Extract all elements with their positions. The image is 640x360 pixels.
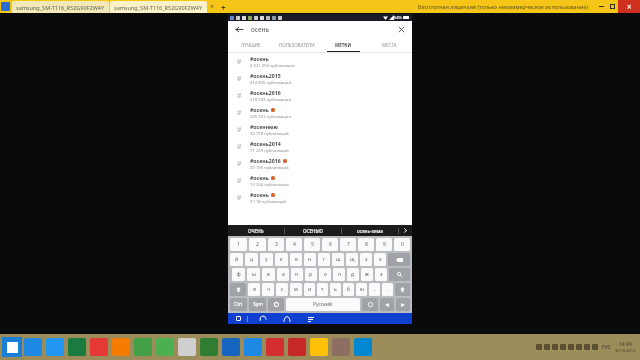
button[interactable]: # <box>228 172 412 189</box>
button[interactable]: # <box>228 87 412 104</box>
button[interactable]: Search <box>389 268 410 281</box>
button[interactable]: к <box>275 253 288 266</box>
button[interactable]: # <box>228 138 412 155</box>
button[interactable]: Clear search <box>395 23 407 35</box>
button[interactable]: Taskbar app <box>46 338 64 356</box>
button[interactable]: л <box>333 268 345 281</box>
button[interactable]: н <box>304 253 316 266</box>
button[interactable]: Taskbar app <box>200 338 218 356</box>
button[interactable]: Shift <box>230 283 246 296</box>
button[interactable]: 6 <box>322 238 338 251</box>
button[interactable]: Back <box>233 23 245 35</box>
button[interactable]: в <box>262 268 275 281</box>
button[interactable]: Left <box>380 298 394 311</box>
button[interactable]: й <box>230 253 243 266</box>
button[interactable]: ПОЛЬЗОВАТЕЛИ <box>274 37 320 52</box>
button[interactable]: 2 <box>249 238 266 251</box>
button[interactable]: х <box>374 253 386 266</box>
button[interactable]: о <box>319 268 331 281</box>
button[interactable]: # <box>228 189 412 206</box>
button[interactable]: Taskbar app <box>112 338 130 356</box>
button[interactable]: р <box>305 268 317 281</box>
button[interactable]: Taskbar app <box>90 338 108 356</box>
button[interactable]: New tab <box>217 1 229 13</box>
button[interactable]: Русский <box>286 298 360 311</box>
button[interactable]: Close window <box>618 0 640 13</box>
button[interactable]: е <box>290 253 302 266</box>
button[interactable]: и <box>304 283 315 296</box>
button[interactable]: Taskbar app <box>178 338 196 356</box>
button[interactable]: . <box>382 283 393 296</box>
button[interactable]: ф <box>232 268 245 281</box>
button[interactable]: ш <box>332 253 344 266</box>
button[interactable]: Taskbar app <box>310 338 328 356</box>
button[interactable]: МЕСТА <box>366 37 412 52</box>
button[interactable]: Minimize <box>596 1 607 12</box>
button[interactable]: Taskbar app <box>244 338 262 356</box>
button[interactable]: ч <box>262 283 274 296</box>
button[interactable]: 9 <box>376 238 392 251</box>
button[interactable]: Ctrl <box>230 298 247 311</box>
button[interactable]: э <box>375 268 387 281</box>
button[interactable]: , <box>369 283 380 296</box>
button[interactable]: samsung_SM-T116_R52G90F2W4Y <box>110 1 207 13</box>
button[interactable]: # <box>228 155 412 172</box>
button[interactable]: Taskbar app <box>222 338 240 356</box>
button[interactable]: App icon <box>1 2 10 11</box>
button[interactable]: ОСЕНЬЮ <box>285 225 341 236</box>
button[interactable]: More suggestions <box>399 225 412 236</box>
button[interactable]: Recents <box>306 314 316 324</box>
button[interactable]: Taskbar app <box>134 338 152 356</box>
button[interactable]: 4 <box>286 238 302 251</box>
button[interactable]: # <box>228 70 412 87</box>
button[interactable]: # <box>228 53 412 70</box>
button[interactable]: у <box>260 253 273 266</box>
button[interactable]: Taskbar app <box>354 338 372 356</box>
button[interactable]: д <box>347 268 359 281</box>
button[interactable]: # <box>228 121 412 138</box>
button[interactable]: Backspace <box>388 253 410 266</box>
button[interactable]: Shift right <box>395 283 410 296</box>
button[interactable]: т <box>317 283 328 296</box>
button[interactable]: щ <box>346 253 358 266</box>
button[interactable]: Close tab <box>207 2 217 12</box>
button[interactable]: ы <box>247 268 260 281</box>
button[interactable]: # <box>228 104 412 121</box>
button[interactable]: м <box>290 283 302 296</box>
button[interactable]: Taskbar app <box>68 338 86 356</box>
button[interactable]: п <box>291 268 303 281</box>
button[interactable]: а <box>277 268 289 281</box>
button[interactable]: 8 <box>358 238 374 251</box>
button[interactable]: 0 <box>394 238 410 251</box>
button[interactable]: ЛУЧШИЕ <box>228 37 274 52</box>
button[interactable]: Right <box>396 298 410 311</box>
button[interactable]: 3 <box>268 238 284 251</box>
button[interactable]: МЕТКИ <box>320 37 366 52</box>
button[interactable]: ц <box>245 253 258 266</box>
button[interactable]: ОЧЕНЬ <box>228 225 284 236</box>
button[interactable]: ю <box>356 283 367 296</box>
button[interactable]: с <box>276 283 288 296</box>
button[interactable]: Home <box>282 314 292 324</box>
button[interactable]: 1 <box>230 238 247 251</box>
button[interactable]: ь <box>330 283 341 296</box>
button[interactable]: Taskbar app <box>266 338 284 356</box>
button[interactable]: Maximize <box>607 1 618 12</box>
button[interactable]: 7 <box>340 238 356 251</box>
button[interactable]: Emoji <box>362 298 378 311</box>
button[interactable]: Keyboard toggle <box>234 314 243 323</box>
button[interactable]: ж <box>361 268 373 281</box>
button[interactable]: б <box>343 283 354 296</box>
button[interactable]: Keyboard settings <box>268 298 284 311</box>
button[interactable]: осень-зима <box>342 225 398 236</box>
button[interactable]: Taskbar app <box>24 338 42 356</box>
button[interactable]: Start <box>2 337 22 357</box>
button[interactable]: Taskbar app <box>288 338 306 356</box>
button[interactable]: samsung_SM-T116_R52G90F2W4Y <box>12 1 109 13</box>
button[interactable]: 5 <box>304 238 320 251</box>
button[interactable]: г <box>318 253 330 266</box>
button[interactable]: з <box>360 253 372 266</box>
button[interactable]: Taskbar app <box>156 338 174 356</box>
button[interactable]: я <box>248 283 260 296</box>
